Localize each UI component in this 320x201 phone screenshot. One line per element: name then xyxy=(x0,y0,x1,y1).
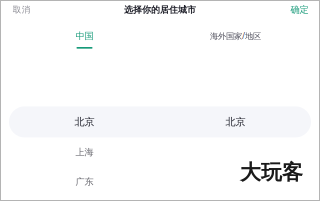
button[interactable]: 确定 xyxy=(279,0,320,19)
staticText: 选择你的居住城市 xyxy=(124,4,196,15)
staticText: 大玩客 xyxy=(240,159,303,185)
staticText: 海外国家/地区 xyxy=(210,30,261,42)
staticText: 北京 xyxy=(74,115,94,128)
button[interactable]: 上海 xyxy=(0,137,320,167)
staticText: 确定 xyxy=(291,4,309,15)
button[interactable]: 取消 xyxy=(0,0,43,19)
staticText: 广东 xyxy=(75,176,93,187)
button[interactable]: 中国 xyxy=(9,19,160,51)
staticText: 中国 xyxy=(75,30,93,42)
button[interactable]: 北京 xyxy=(0,106,320,137)
button[interactable]: 海外国家/地区 xyxy=(160,19,311,51)
staticText: 取消 xyxy=(13,4,31,15)
button[interactable]: 广东 xyxy=(0,167,320,196)
staticText: 上海 xyxy=(75,146,93,158)
staticText: 北京 xyxy=(225,115,245,128)
